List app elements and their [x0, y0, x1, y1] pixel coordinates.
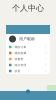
- staticText: 个人中心: [12, 3, 44, 13]
- staticText: 我的订单: [15, 45, 27, 49]
- staticText: >: [45, 45, 47, 49]
- button[interactable]: 我的收藏: [6, 50, 50, 56]
- staticText: 地址管理: [15, 63, 27, 67]
- staticText: 用户昵称: [19, 36, 35, 41]
- staticText: 我的收藏: [15, 51, 27, 55]
- staticText: 优惠券: [15, 57, 24, 61]
- button[interactable]: 地址管理: [6, 62, 50, 68]
- staticText: >: [45, 57, 47, 61]
- staticText: >: [45, 51, 47, 55]
- staticText: >: [45, 69, 47, 73]
- staticText: 设置: [15, 69, 21, 73]
- staticText: >: [45, 63, 47, 67]
- button[interactable]: 设置: [6, 68, 50, 74]
- button[interactable]: 我的订单: [6, 44, 50, 50]
- button[interactable]: 优惠券: [6, 56, 50, 62]
